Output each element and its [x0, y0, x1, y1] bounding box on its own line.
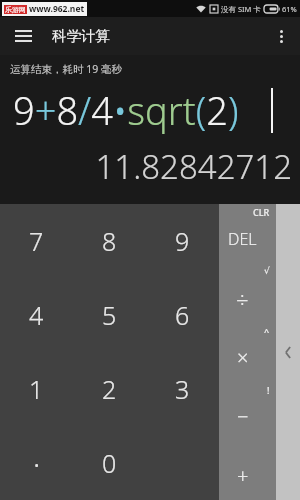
button[interactable]: √	[219, 264, 276, 323]
button[interactable]: 5	[73, 278, 146, 352]
button[interactable]: 8	[73, 204, 146, 278]
staticText: −	[237, 403, 249, 430]
button[interactable]: 4	[0, 278, 73, 352]
staticText: 没有 SIM 卡	[221, 4, 261, 14]
staticText: DEL	[228, 228, 257, 250]
staticText: 3	[175, 372, 190, 406]
staticText: CLR	[253, 206, 270, 218]
button[interactable]: 7	[0, 204, 73, 278]
staticText: 0	[102, 446, 117, 480]
staticText: !	[267, 384, 270, 396]
staticText: √	[264, 266, 270, 276]
button[interactable]: ^	[219, 323, 276, 382]
button[interactable]: 9+8/4•sqrt(2)	[0, 81, 300, 139]
button[interactable]: !	[219, 382, 276, 441]
button[interactable]: More options	[266, 21, 296, 51]
button[interactable]: 3	[146, 352, 219, 426]
staticText: 9+8/4•sqrt(2)	[13, 84, 239, 136]
staticText: 11.82842712	[95, 144, 292, 189]
staticText: 2	[102, 372, 117, 406]
staticText: 5	[102, 298, 117, 332]
staticText: +	[237, 462, 249, 489]
staticText: 运算结束，耗时 19 毫秒	[10, 62, 122, 76]
staticText: www.962.net	[29, 3, 85, 15]
staticText: 乐游网	[5, 5, 26, 14]
button[interactable]: 9	[146, 204, 219, 278]
staticText: ^	[264, 325, 270, 337]
staticText: ·	[33, 443, 41, 484]
staticText: 6	[175, 298, 190, 332]
staticText: 8	[102, 224, 117, 258]
staticText: 科学计算	[52, 27, 110, 45]
staticText: ×	[237, 344, 249, 371]
staticText: 4	[29, 298, 44, 332]
button[interactable]: Open navigation menu	[7, 20, 39, 52]
staticText: ÷	[236, 284, 249, 314]
staticText: 61%	[282, 4, 297, 14]
button[interactable]: Expand side panel	[276, 204, 300, 500]
staticText: 1	[29, 372, 44, 406]
staticText: 7	[29, 224, 44, 258]
button[interactable]: ·	[0, 426, 73, 500]
staticText: 9	[175, 224, 190, 258]
button[interactable]: CLR	[219, 204, 276, 264]
button[interactable]: 6	[146, 278, 219, 352]
button[interactable]: 0	[73, 426, 146, 500]
button[interactable]: +	[219, 441, 276, 500]
button[interactable]: 2	[73, 352, 146, 426]
button[interactable]: 1	[0, 352, 73, 426]
